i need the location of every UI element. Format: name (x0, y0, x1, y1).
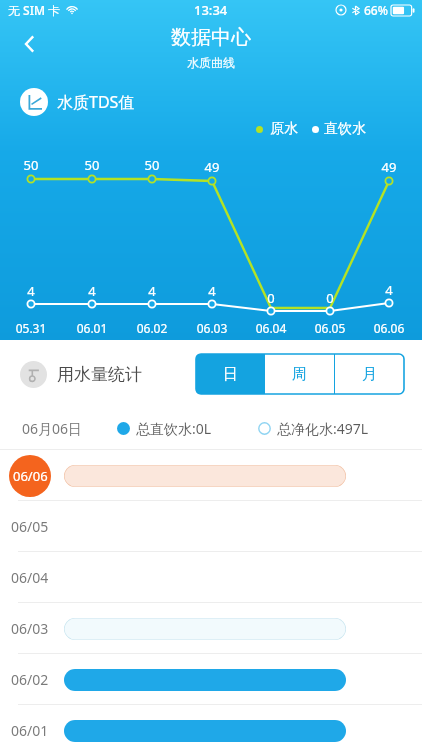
staticText: 06/03 (11, 619, 49, 638)
button[interactable]: Back (8, 22, 52, 66)
staticText: 06.03 (186, 320, 238, 336)
staticText: 4 (75, 282, 109, 300)
button[interactable]: 月 (335, 354, 404, 394)
staticText: 06.01 (66, 320, 118, 336)
staticText: 49 (372, 158, 406, 176)
staticText: 4 (372, 281, 406, 299)
staticText: 06月06日 (22, 419, 83, 438)
staticText: 水质曲线 (187, 55, 235, 70)
staticText: 50 (135, 156, 169, 174)
button[interactable]: 周 (265, 354, 334, 394)
staticText: 0 (254, 289, 288, 307)
button[interactable]: 06/05 (0, 501, 422, 552)
staticText: 水质TDS值 (57, 91, 135, 113)
staticText: 4 (135, 282, 169, 300)
staticText: 4 (14, 282, 48, 300)
button[interactable]: 06/06 (0, 450, 422, 501)
staticText: 无 SIM 卡 (8, 2, 61, 18)
staticText: 50 (75, 156, 109, 174)
staticText: 06.02 (126, 320, 178, 336)
staticText: 总净化水:497L (277, 419, 369, 438)
staticText: 06.05 (304, 320, 356, 336)
staticText: 06.06 (363, 320, 415, 336)
staticText: 06/05 (11, 517, 49, 536)
staticText: 原水 (270, 120, 298, 138)
staticText: 周 (292, 365, 307, 384)
button[interactable]: 06/01 (0, 705, 422, 750)
staticText: 0 (313, 289, 347, 307)
button[interactable]: 06/03 (0, 603, 422, 654)
button[interactable]: 日 (196, 354, 264, 394)
staticText: 66% (364, 2, 388, 18)
staticText: 直饮水 (324, 120, 366, 138)
staticText: 49 (195, 158, 229, 176)
staticText: 月 (362, 365, 377, 384)
staticText: 用水量统计 (57, 364, 142, 385)
staticText: 06/01 (11, 721, 49, 740)
staticText: 05.31 (5, 320, 57, 336)
staticText: 数据中心 (171, 25, 251, 50)
staticText: 4 (195, 282, 229, 300)
staticText: 06/02 (11, 670, 49, 689)
staticText: 总直饮水:0L (136, 419, 212, 438)
button[interactable]: 06/02 (0, 654, 422, 705)
staticText: 13:34 (194, 1, 228, 19)
staticText: 50 (14, 156, 48, 174)
staticText: 06/06 (13, 467, 48, 485)
staticText: 06.04 (245, 320, 297, 336)
staticText: 日 (223, 365, 238, 384)
button[interactable]: 06/04 (0, 552, 422, 603)
staticText: 06/04 (11, 568, 49, 587)
